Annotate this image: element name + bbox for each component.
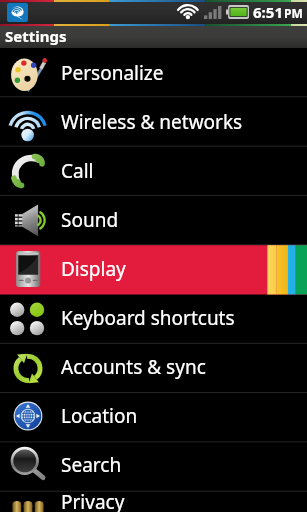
staticText: Location xyxy=(61,403,138,429)
staticText: 6:51 xyxy=(253,2,283,22)
button[interactable]: Sound xyxy=(0,195,307,244)
button[interactable]: Privacy xyxy=(0,489,307,512)
staticText: Privacy xyxy=(61,489,125,512)
button[interactable]: Location xyxy=(0,391,307,440)
staticText: Personalize xyxy=(61,60,164,86)
staticText: Call xyxy=(61,158,94,184)
staticText: PM xyxy=(284,5,303,21)
staticText: Accounts & sync xyxy=(61,354,206,380)
button[interactable]: Accounts & sync xyxy=(0,342,307,391)
staticText: Keyboard shortcuts xyxy=(61,305,235,331)
staticText: Display xyxy=(61,256,126,282)
staticText: Search xyxy=(61,452,122,478)
button[interactable]: Wireless & networks xyxy=(0,97,307,146)
staticText: Wireless & networks xyxy=(61,109,243,135)
staticText: Sound xyxy=(61,207,119,233)
button[interactable]: Keyboard shortcuts xyxy=(0,293,307,342)
button[interactable]: Personalize xyxy=(0,48,307,97)
staticText: Settings xyxy=(5,26,67,46)
button[interactable]: Display xyxy=(0,244,307,293)
button[interactable]: Search xyxy=(0,440,307,489)
button[interactable]: Call xyxy=(0,146,307,195)
